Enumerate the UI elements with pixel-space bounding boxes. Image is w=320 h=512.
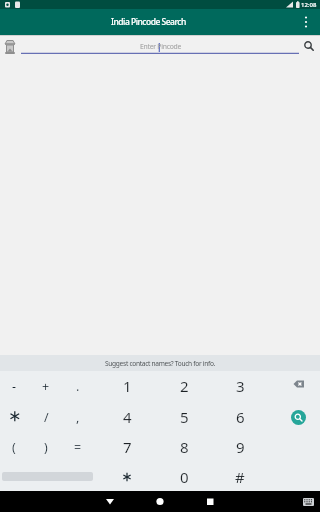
button[interactable]: 9 bbox=[225, 432, 255, 462]
button[interactable]: ) bbox=[31, 432, 61, 462]
button[interactable]: / bbox=[31, 402, 61, 432]
button[interactable]: = bbox=[63, 432, 93, 462]
button[interactable]: 3 bbox=[225, 371, 255, 401]
button[interactable] bbox=[296, 491, 320, 512]
staticText: = bbox=[74, 439, 82, 456]
button[interactable]: + bbox=[31, 371, 61, 401]
button[interactable]: 5 bbox=[169, 402, 199, 432]
button[interactable]: , bbox=[63, 402, 93, 432]
button[interactable]: 2 bbox=[169, 371, 199, 401]
button[interactable] bbox=[96, 491, 124, 512]
button[interactable]: Enter Pincode bbox=[22, 35, 300, 57]
button[interactable] bbox=[196, 491, 225, 512]
button[interactable]: ( bbox=[0, 432, 29, 462]
staticText: . bbox=[76, 378, 80, 395]
staticText: 2 bbox=[180, 376, 189, 396]
button[interactable] bbox=[283, 402, 313, 432]
staticText: Enter Pincode bbox=[140, 42, 182, 51]
button[interactable]: # bbox=[225, 462, 255, 492]
staticText: - bbox=[12, 378, 17, 395]
button[interactable]: - bbox=[0, 371, 29, 401]
staticText: ( bbox=[12, 439, 16, 456]
staticText: 8 bbox=[180, 437, 189, 457]
staticText: + bbox=[42, 378, 50, 395]
staticText: / bbox=[44, 409, 49, 426]
button[interactable] bbox=[0, 355, 320, 371]
button[interactable] bbox=[283, 371, 313, 401]
staticText: # bbox=[235, 467, 245, 487]
staticText: 7 bbox=[123, 437, 132, 457]
staticText: , bbox=[76, 409, 80, 426]
staticText: India Pincode Search bbox=[111, 16, 186, 28]
staticText: Suggest contact names? Touch for info. bbox=[105, 359, 216, 368]
button[interactable]: 6 bbox=[225, 402, 255, 432]
staticText: 12:08 bbox=[301, 1, 317, 9]
button[interactable] bbox=[0, 402, 30, 432]
button[interactable]: 0 bbox=[169, 462, 199, 492]
button[interactable]: . bbox=[63, 371, 93, 401]
staticText: 3 bbox=[236, 376, 245, 396]
staticText: 6 bbox=[236, 407, 245, 427]
button[interactable] bbox=[112, 462, 142, 492]
button[interactable]: 1 bbox=[112, 371, 142, 401]
button[interactable]: 8 bbox=[169, 432, 199, 462]
staticText: 1 bbox=[123, 376, 132, 396]
button[interactable]: 7 bbox=[112, 432, 142, 462]
staticText: 9 bbox=[236, 437, 245, 457]
staticText: 0 bbox=[180, 467, 189, 487]
button[interactable] bbox=[296, 9, 320, 35]
staticText: 5 bbox=[180, 407, 189, 427]
staticText: 4 bbox=[123, 407, 132, 427]
button[interactable]: 4 bbox=[112, 402, 142, 432]
staticText: ) bbox=[44, 439, 48, 456]
button[interactable] bbox=[146, 491, 174, 512]
